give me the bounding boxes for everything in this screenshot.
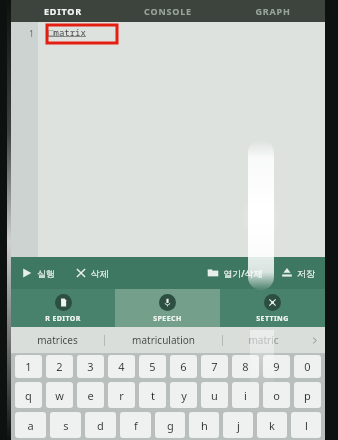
- button[interactable]: 4: [108, 355, 135, 378]
- button[interactable]: matric: [223, 327, 303, 353]
- button[interactable]: t: [139, 382, 166, 408]
- staticText: i: [244, 388, 247, 403]
- staticText: 6: [180, 359, 187, 374]
- staticText: □matrix: [48, 26, 86, 38]
- button[interactable]: y: [170, 382, 197, 408]
- staticText: 5: [149, 359, 156, 374]
- button[interactable]: 9: [263, 355, 290, 378]
- button[interactable]: SPEECH: [115, 289, 220, 327]
- staticText: j: [237, 418, 240, 433]
- button[interactable]: q: [15, 382, 42, 408]
- staticText: u: [211, 388, 218, 403]
- button[interactable]: p: [294, 382, 321, 408]
- button[interactable]: r: [108, 382, 135, 408]
- staticText: 0: [304, 359, 311, 374]
- button[interactable]: 0: [294, 355, 321, 378]
- staticText: 실행: [37, 268, 55, 279]
- staticText: f: [134, 418, 138, 433]
- staticText: SPEECH: [153, 314, 182, 324]
- staticText: GRAPH: [255, 5, 291, 17]
- button[interactable]: EDITOR: [11, 0, 115, 22]
- staticText: t: [151, 388, 155, 403]
- button[interactable]: □matrix: [38, 22, 325, 257]
- button[interactable]: SETTING: [220, 289, 325, 327]
- staticText: 1: [25, 359, 32, 374]
- button[interactable]: Delete: [73, 263, 111, 283]
- button[interactable]: 7: [201, 355, 228, 378]
- button[interactable]: s: [50, 412, 81, 438]
- staticText: k: [269, 418, 275, 433]
- button[interactable]: R EDITOR: [11, 289, 115, 327]
- staticText: 7: [211, 359, 218, 374]
- button[interactable]: g: [155, 412, 185, 438]
- button[interactable]: l: [291, 412, 321, 438]
- button[interactable]: o: [263, 382, 290, 408]
- button[interactable]: Open: [205, 263, 265, 283]
- staticText: CONSOLE: [144, 5, 192, 17]
- staticText: r: [119, 388, 124, 403]
- staticText: 8: [242, 359, 249, 374]
- staticText: s: [63, 418, 69, 433]
- staticText: matrices: [37, 333, 78, 347]
- staticText: w: [55, 388, 64, 403]
- staticText: 2: [56, 359, 63, 374]
- button[interactable]: matrices: [11, 327, 104, 353]
- button[interactable]: 2: [46, 355, 73, 378]
- staticText: d: [97, 418, 104, 433]
- button[interactable]: k: [257, 412, 287, 438]
- staticText: l: [305, 418, 308, 433]
- button[interactable]: GRAPH: [220, 0, 325, 22]
- button[interactable]: Save: [279, 263, 317, 283]
- staticText: q: [25, 388, 32, 403]
- staticText: matric: [248, 333, 279, 347]
- button[interactable]: h: [189, 412, 219, 438]
- button[interactable]: Run: [19, 263, 57, 283]
- button[interactable]: More suggestions: [303, 327, 325, 353]
- button[interactable]: 1: [15, 355, 42, 378]
- button[interactable]: 5: [139, 355, 166, 378]
- staticText: e: [87, 388, 94, 403]
- staticText: SETTING: [256, 314, 289, 324]
- staticText: 1: [29, 28, 34, 39]
- staticText: p: [304, 388, 311, 403]
- staticText: matriculation: [132, 333, 195, 347]
- staticText: y: [181, 388, 187, 403]
- staticText: h: [201, 418, 208, 433]
- staticText: 4: [118, 359, 125, 374]
- button[interactable]: i: [232, 382, 259, 408]
- button[interactable]: u: [201, 382, 228, 408]
- staticText: EDITOR: [44, 5, 82, 17]
- button[interactable]: matriculation: [105, 327, 222, 353]
- staticText: 9: [273, 359, 280, 374]
- staticText: R EDITOR: [45, 314, 81, 324]
- button[interactable]: d: [85, 412, 116, 438]
- staticText: a: [27, 418, 34, 433]
- button[interactable]: w: [46, 382, 73, 408]
- staticText: 삭제: [91, 268, 109, 279]
- button[interactable]: 8: [232, 355, 259, 378]
- button[interactable]: a: [15, 412, 46, 438]
- button[interactable]: CONSOLE: [115, 0, 220, 22]
- staticText: o: [273, 388, 280, 403]
- button[interactable]: f: [120, 412, 151, 438]
- button[interactable]: j: [223, 412, 253, 438]
- button[interactable]: 6: [170, 355, 197, 378]
- staticText: 저장: [297, 268, 315, 279]
- staticText: g: [167, 418, 174, 433]
- staticText: 열기/삭제: [223, 267, 263, 279]
- staticText: 3: [87, 359, 94, 374]
- button[interactable]: 3: [77, 355, 104, 378]
- button[interactable]: e: [77, 382, 104, 408]
